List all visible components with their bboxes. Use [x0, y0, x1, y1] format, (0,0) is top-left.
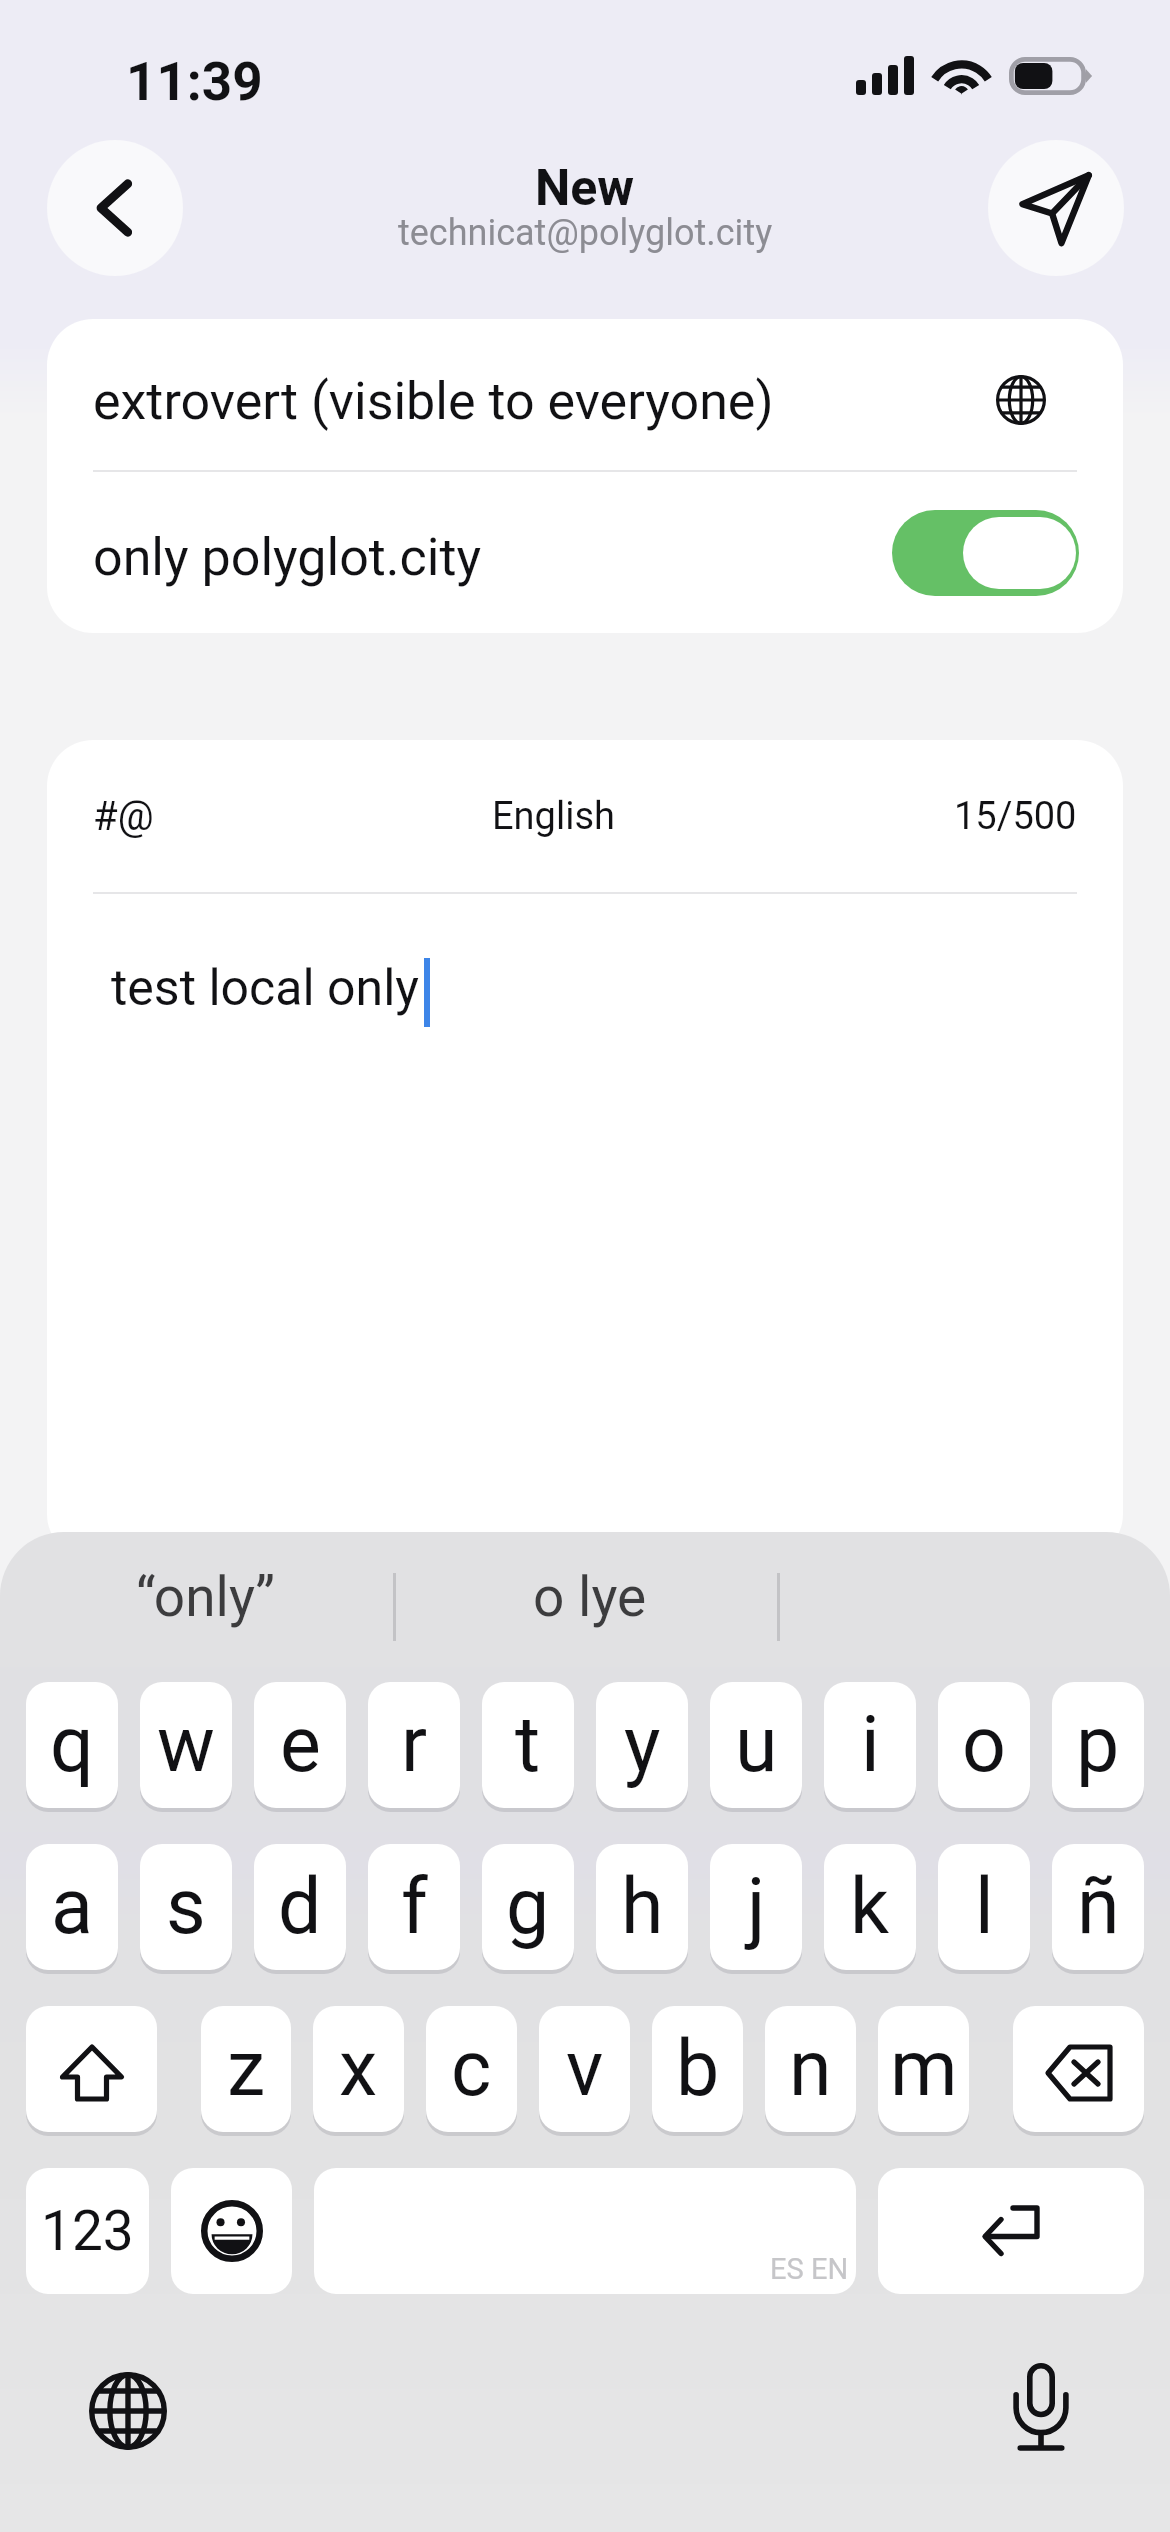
- staticText: l: [975, 1862, 994, 1952]
- staticText: e: [280, 1700, 321, 1790]
- staticText: 15/500: [954, 794, 1077, 839]
- staticText: k: [850, 1862, 890, 1952]
- button[interactable]: Switch keyboard: [76, 2359, 180, 2463]
- button[interactable]: f: [368, 1844, 460, 1970]
- staticText: #@: [93, 793, 154, 840]
- staticText: o: [962, 1700, 1006, 1790]
- staticText: u: [735, 1700, 778, 1790]
- staticText: 123: [41, 2199, 134, 2263]
- button[interactable]: o lye: [533, 1532, 647, 1672]
- staticText: ES EN: [770, 2252, 849, 2286]
- staticText: h: [621, 1862, 664, 1952]
- staticText: English: [492, 794, 615, 839]
- button[interactable]: o: [938, 1682, 1030, 1808]
- button[interactable]: p: [1052, 1682, 1144, 1808]
- staticText: 11:39: [126, 51, 263, 113]
- button[interactable]: x: [313, 2006, 404, 2132]
- staticText: i: [861, 1700, 880, 1790]
- button[interactable]: d: [254, 1844, 346, 1970]
- staticText: x: [339, 2024, 378, 2114]
- button[interactable]: only polyglot.city: [47, 472, 1123, 633]
- button[interactable]: Dictate: [989, 2355, 1093, 2459]
- button[interactable]: g: [482, 1844, 574, 1970]
- staticText: “only”: [136, 1565, 276, 1629]
- button[interactable]: q: [26, 1682, 118, 1808]
- staticText: t: [515, 1700, 541, 1790]
- staticText: d: [278, 1862, 322, 1952]
- button[interactable]: e: [254, 1682, 346, 1808]
- button[interactable]: ñ: [1052, 1844, 1144, 1970]
- staticText: extrovert (visible to everyone): [93, 371, 774, 432]
- button[interactable]: r: [368, 1682, 460, 1808]
- button[interactable]: l: [938, 1844, 1030, 1970]
- button[interactable]: n: [765, 2006, 856, 2132]
- staticText: s: [166, 1862, 206, 1952]
- staticText: a: [51, 1862, 93, 1952]
- button[interactable]: “only”: [136, 1532, 276, 1672]
- button[interactable]: w: [140, 1682, 232, 1808]
- button[interactable]: a: [26, 1844, 118, 1970]
- staticText: z: [227, 2024, 266, 2114]
- button[interactable]: s: [140, 1844, 232, 1970]
- staticText: n: [789, 2024, 832, 2114]
- staticText: o lye: [533, 1565, 647, 1629]
- button[interactable]: Shift: [26, 2006, 157, 2132]
- button[interactable]: 123: [26, 2168, 149, 2294]
- staticText: ñ: [1077, 1862, 1120, 1952]
- staticText: test local only: [111, 959, 419, 1018]
- button[interactable]: c: [426, 2006, 517, 2132]
- staticText: j: [747, 1862, 766, 1952]
- button[interactable]: Emoji: [171, 2168, 292, 2294]
- staticText: y: [624, 1700, 661, 1790]
- button[interactable]: m: [878, 2006, 969, 2132]
- staticText: c: [451, 2024, 492, 2114]
- button[interactable]: Back: [47, 140, 183, 276]
- staticText: b: [676, 2024, 720, 2114]
- button[interactable]: j: [710, 1844, 802, 1970]
- staticText: only polyglot.city: [93, 527, 481, 588]
- staticText: q: [50, 1700, 94, 1790]
- button[interactable]: Return: [878, 2168, 1144, 2294]
- button[interactable]: h: [596, 1844, 688, 1970]
- button[interactable]: b: [652, 2006, 743, 2132]
- button[interactable]: z: [201, 2006, 291, 2132]
- button[interactable]: Space: [314, 2168, 856, 2294]
- staticText: v: [566, 2024, 604, 2114]
- staticText: g: [506, 1862, 550, 1952]
- button[interactable]: k: [824, 1844, 916, 1970]
- staticText: New: [535, 159, 635, 218]
- staticText: f: [401, 1862, 428, 1952]
- staticText: r: [401, 1700, 428, 1790]
- staticText: w: [157, 1700, 215, 1790]
- button[interactable]: u: [710, 1682, 802, 1808]
- button[interactable]: y: [596, 1682, 688, 1808]
- button[interactable]: Backspace: [1013, 2006, 1144, 2132]
- staticText: p: [1076, 1700, 1120, 1790]
- button[interactable]: Send: [988, 140, 1124, 276]
- button[interactable]: extrovert (visible to everyone): [47, 319, 1123, 471]
- button[interactable]: v: [539, 2006, 630, 2132]
- button[interactable]: i: [824, 1682, 916, 1808]
- button[interactable]: t: [482, 1682, 574, 1808]
- staticText: m: [890, 2024, 958, 2114]
- staticText: technicat@polyglot.city: [398, 212, 773, 254]
